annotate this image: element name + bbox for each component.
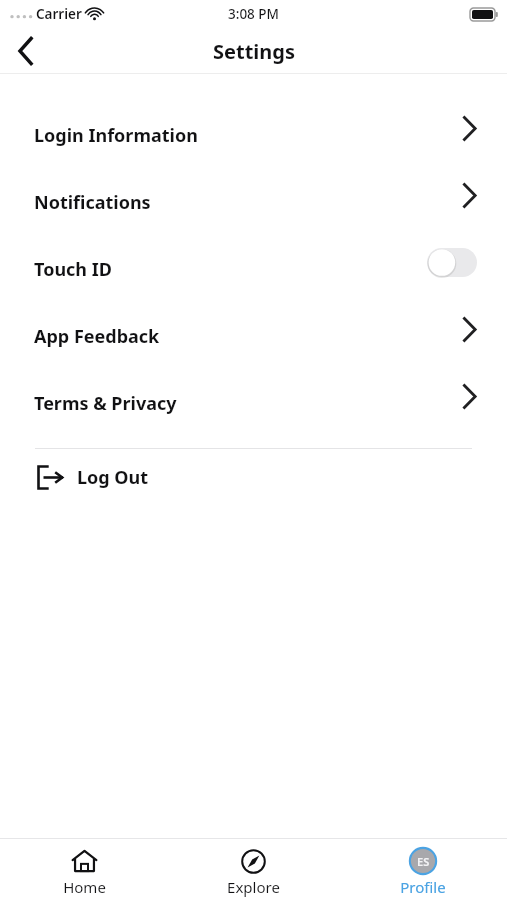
button[interactable]: Explore: [169, 842, 338, 897]
button[interactable]: Back: [0, 28, 52, 74]
button[interactable]: Touch ID toggle: [427, 248, 477, 277]
button[interactable]: ES: [338, 842, 507, 897]
staticText: Terms & Privacy: [34, 391, 177, 416]
staticText: Touch ID: [34, 257, 112, 282]
staticText: ES: [417, 854, 430, 869]
button[interactable]: Login Information: [0, 102, 507, 169]
staticText: Profile: [400, 877, 446, 897]
staticText: Log Out: [77, 465, 149, 490]
button[interactable]: Notifications: [0, 169, 507, 236]
button[interactable]: Touch ID: [0, 236, 507, 303]
staticText: Settings: [213, 38, 295, 65]
button[interactable]: Log Out: [0, 449, 507, 506]
button[interactable]: Home: [0, 842, 169, 897]
staticText: Home: [63, 877, 106, 897]
staticText: Carrier: [36, 5, 82, 23]
staticText: App Feedback: [34, 324, 160, 349]
staticText: Explore: [227, 877, 280, 897]
button[interactable]: Terms & Privacy: [0, 370, 507, 437]
staticText: 3:08 PM: [228, 5, 279, 23]
staticText: Login Information: [34, 123, 198, 148]
staticText: Notifications: [34, 190, 151, 215]
button[interactable]: App Feedback: [0, 303, 507, 370]
